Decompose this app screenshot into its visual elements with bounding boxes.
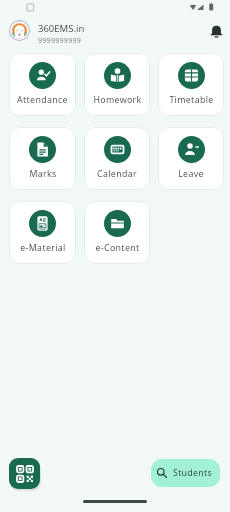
- button[interactable]: e-Material: [9, 201, 76, 264]
- staticText: Calendar: [97, 168, 137, 180]
- button[interactable]: Marks: [9, 127, 76, 190]
- staticText: 9999999999: [38, 35, 82, 45]
- staticText: Homework: [93, 94, 142, 106]
- button[interactable]: Notifications: [205, 20, 227, 42]
- button[interactable]: Students: [151, 459, 220, 487]
- button[interactable]: Attendance: [9, 53, 76, 116]
- button[interactable]: Homework: [84, 53, 150, 116]
- button[interactable]: Scan QR code: [9, 458, 40, 489]
- staticText: e-Material: [20, 242, 66, 254]
- staticText: Timetable: [169, 94, 214, 106]
- staticText: Students: [173, 467, 213, 479]
- button[interactable]: Calendar: [84, 127, 150, 190]
- staticText: Attendance: [17, 94, 68, 106]
- staticText: Marks: [29, 168, 57, 180]
- button[interactable]: Profile: [9, 20, 30, 41]
- staticText: 360EMS.in: [38, 22, 85, 35]
- staticText: Leave: [178, 168, 204, 180]
- button[interactable]: Leave: [158, 127, 224, 190]
- button[interactable]: Timetable: [158, 53, 224, 116]
- button[interactable]: e-Content: [84, 201, 150, 264]
- staticText: e-Content: [95, 242, 140, 254]
